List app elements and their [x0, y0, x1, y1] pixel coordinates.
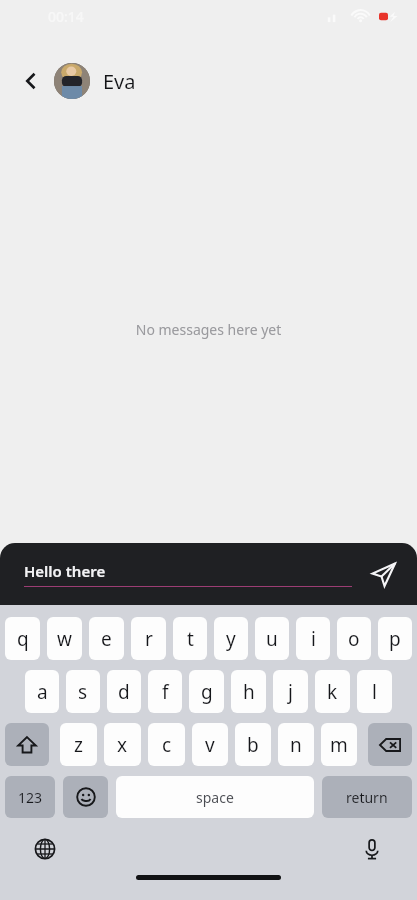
- button[interactable]: d: [107, 670, 141, 713]
- button[interactable]: j: [273, 670, 308, 713]
- button[interactable]: t: [173, 617, 207, 660]
- button[interactable]: c: [148, 723, 185, 766]
- button[interactable]: Hello there: [24, 561, 352, 587]
- staticText: h: [243, 679, 255, 705]
- staticText: t: [187, 626, 194, 652]
- button[interactable]: z: [60, 723, 97, 766]
- button[interactable]: u: [255, 617, 289, 660]
- button[interactable]: n: [278, 723, 314, 766]
- button[interactable]: g: [189, 670, 224, 713]
- staticText: x: [117, 732, 128, 758]
- button[interactable]: 123: [5, 776, 55, 818]
- button[interactable]: Eva: [103, 68, 136, 95]
- staticText: n: [290, 732, 302, 758]
- staticText: s: [78, 679, 88, 705]
- staticText: i: [311, 626, 316, 652]
- button[interactable]: Change keyboard language: [28, 832, 62, 866]
- button[interactable]: e: [89, 617, 124, 660]
- button[interactable]: q: [5, 617, 40, 660]
- button[interactable]: Emoji: [63, 776, 108, 818]
- button[interactable]: y: [214, 617, 248, 660]
- button[interactable]: s: [66, 670, 100, 713]
- staticText: a: [37, 679, 48, 705]
- button[interactable]: return: [322, 776, 412, 818]
- button[interactable]: v: [192, 723, 228, 766]
- staticText: d: [118, 679, 130, 705]
- button[interactable]: Send: [363, 554, 403, 594]
- button[interactable]: Backspace: [368, 723, 412, 766]
- staticText: g: [201, 679, 213, 705]
- button[interactable]: i: [296, 617, 330, 660]
- button[interactable]: p: [378, 617, 412, 660]
- button[interactable]: r: [131, 617, 166, 660]
- staticText: v: [205, 732, 215, 758]
- button[interactable]: Shift: [5, 723, 49, 766]
- button[interactable]: space: [116, 776, 314, 818]
- staticText: u: [266, 626, 278, 652]
- staticText: c: [162, 732, 172, 758]
- button[interactable]: w: [47, 617, 82, 660]
- staticText: j: [288, 679, 293, 705]
- staticText: f: [162, 679, 169, 705]
- staticText: o: [348, 626, 360, 652]
- button[interactable]: b: [235, 723, 271, 766]
- staticText: space: [196, 788, 234, 807]
- staticText: z: [74, 732, 83, 758]
- staticText: y: [226, 626, 236, 652]
- staticText: Hello there: [24, 561, 106, 581]
- button[interactable]: a: [25, 670, 59, 713]
- button[interactable]: x: [104, 723, 141, 766]
- staticText: l: [372, 679, 377, 705]
- button[interactable]: l: [357, 670, 392, 713]
- button[interactable]: Profile photo: [54, 63, 90, 99]
- staticText: b: [247, 732, 259, 758]
- button[interactable]: k: [315, 670, 350, 713]
- staticText: return: [346, 788, 388, 807]
- staticText: 123: [18, 788, 43, 807]
- staticText: k: [327, 679, 338, 705]
- button[interactable]: m: [321, 723, 357, 766]
- button[interactable]: Dictate: [355, 832, 389, 866]
- button[interactable]: Back: [14, 64, 48, 98]
- staticText: w: [57, 626, 72, 652]
- button[interactable]: h: [231, 670, 266, 713]
- staticText: q: [17, 626, 29, 652]
- staticText: r: [145, 626, 153, 652]
- button[interactable]: f: [148, 670, 182, 713]
- staticText: No messages here yet: [0, 320, 417, 339]
- staticText: m: [330, 732, 348, 758]
- staticText: p: [389, 626, 401, 652]
- staticText: e: [101, 626, 112, 652]
- button[interactable]: o: [337, 617, 371, 660]
